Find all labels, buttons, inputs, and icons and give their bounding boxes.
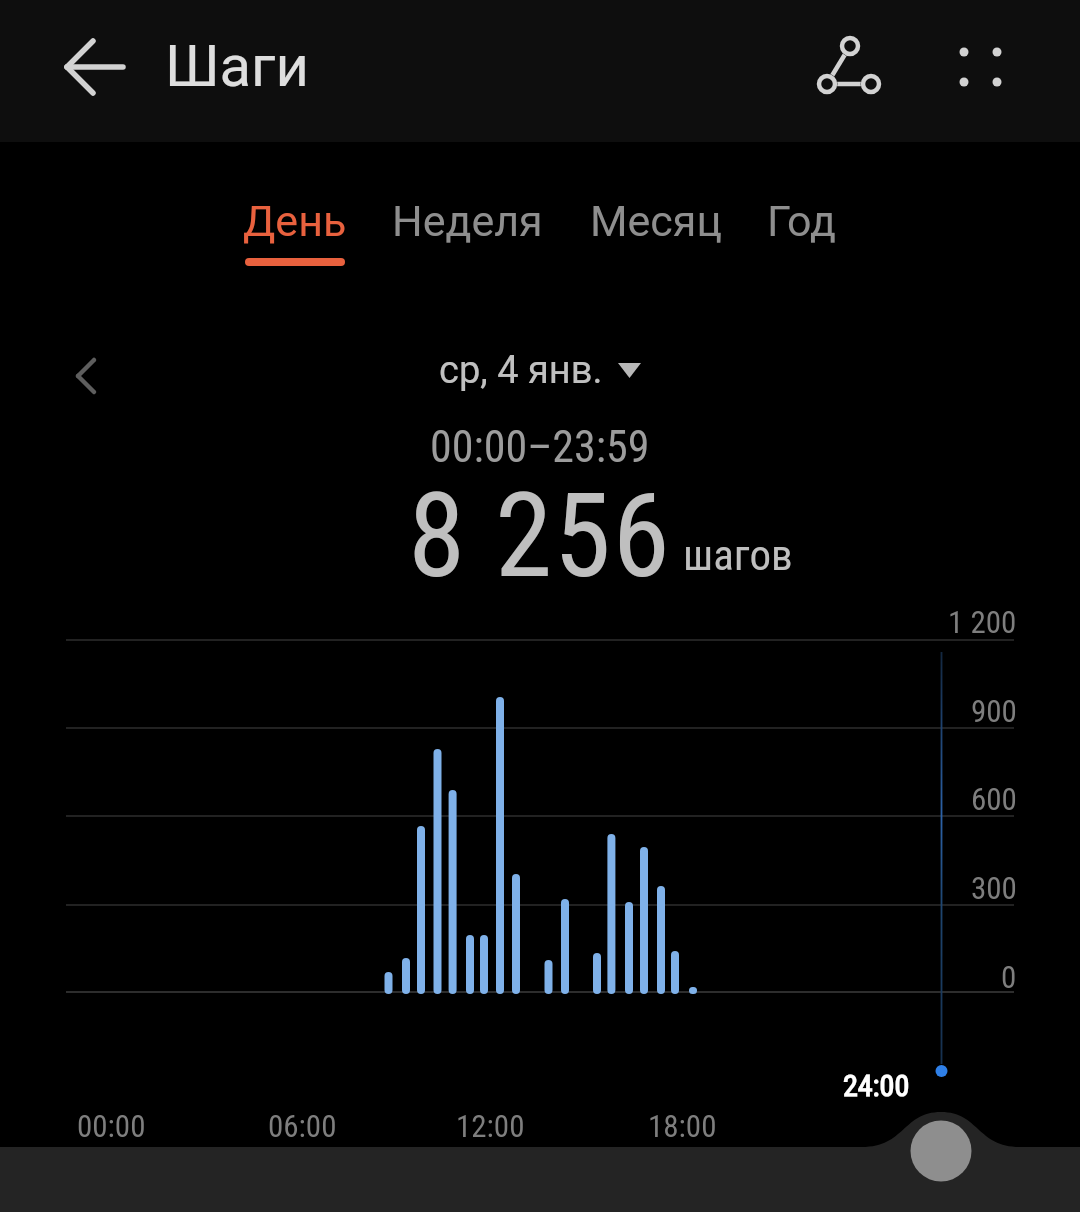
- staticText: ср, 4 янв.: [439, 348, 603, 393]
- button[interactable]: Неделя: [377, 196, 557, 272]
- staticText: День: [243, 196, 347, 246]
- staticText: 300: [971, 870, 1017, 906]
- staticText: 900: [971, 693, 1017, 729]
- button[interactable]: Год: [711, 196, 891, 272]
- staticText: шагов: [683, 530, 793, 580]
- staticText: Месяц: [590, 196, 722, 246]
- button[interactable]: [928, 18, 1034, 124]
- staticText: 06:00: [268, 1108, 337, 1144]
- button[interactable]: Месяц: [566, 196, 746, 272]
- staticText: 8 256: [408, 468, 672, 604]
- staticText: 18:00: [648, 1108, 717, 1144]
- staticText: 00:00: [77, 1108, 146, 1144]
- button[interactable]: [796, 18, 902, 124]
- button[interactable]: [48, 24, 142, 110]
- staticText: Год: [767, 196, 836, 246]
- staticText: Шаги: [165, 32, 309, 100]
- button[interactable]: [56, 346, 116, 406]
- staticText: 0: [1001, 959, 1017, 995]
- staticText: 1 200: [948, 604, 1017, 640]
- staticText: Неделя: [392, 196, 543, 246]
- staticText: 600: [971, 781, 1017, 817]
- staticText: 00:00–23:59: [430, 421, 650, 473]
- button[interactable]: ср, 4 янв.: [439, 348, 641, 393]
- staticText: 24:00: [843, 1068, 910, 1103]
- staticText: 12:00: [456, 1108, 525, 1144]
- button[interactable]: День: [205, 196, 385, 272]
